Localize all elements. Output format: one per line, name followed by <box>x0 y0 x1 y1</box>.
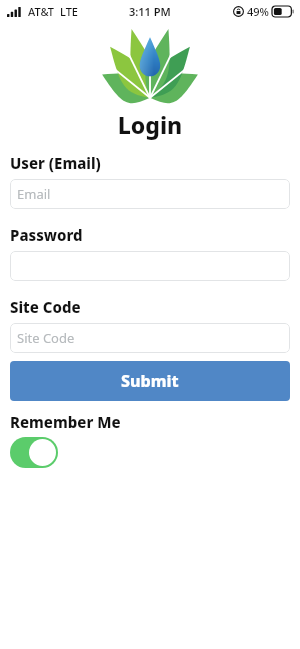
staticText: 3:11 PM <box>129 4 171 19</box>
button[interactable]: Remember Me toggle, on <box>10 437 58 468</box>
staticText: Remember Me <box>10 412 300 432</box>
staticText: Submit <box>121 370 179 392</box>
button[interactable]: Submit <box>10 361 290 401</box>
staticText: Site Code <box>10 297 300 317</box>
button[interactable]: Email <box>10 179 290 209</box>
staticText: LTE <box>60 4 78 19</box>
staticText: 49% <box>247 4 269 19</box>
staticText: Login <box>0 109 300 140</box>
staticText: Site Code <box>17 329 75 347</box>
button[interactable]: Site Code <box>10 323 290 353</box>
staticText: Password <box>10 225 300 245</box>
staticText: Email <box>17 185 51 203</box>
staticText: AT&T <box>28 4 55 19</box>
button[interactable] <box>10 251 290 281</box>
staticText: User (Email) <box>10 153 300 173</box>
